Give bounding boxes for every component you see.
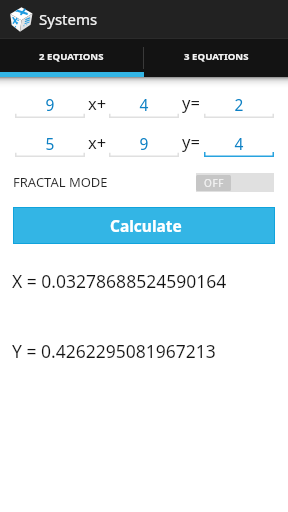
staticText: x+	[88, 131, 107, 153]
staticText: 2	[204, 94, 274, 115]
staticText: 5	[15, 133, 85, 154]
staticText: 9	[15, 94, 85, 115]
button[interactable]: 4	[204, 133, 274, 154]
staticText: OFF	[204, 176, 224, 190]
button[interactable]: 2	[204, 94, 274, 115]
staticText: Systems	[39, 9, 98, 29]
staticText: 3 EQUATIONS	[184, 50, 249, 63]
staticText: y=	[182, 91, 200, 113]
button[interactable]: 9	[15, 94, 85, 115]
staticText: X = 0.03278688524590164	[12, 269, 227, 293]
staticText: 2 EQUATIONS	[39, 50, 104, 63]
staticText: 4	[109, 94, 179, 115]
button[interactable]: 4	[109, 94, 179, 115]
staticText: y=	[182, 130, 200, 152]
button[interactable]: 5	[15, 133, 85, 154]
staticText: 9	[109, 133, 179, 154]
button[interactable]: Systems	[0, 0, 288, 38]
staticText: Calculate	[110, 215, 182, 236]
button[interactable]: FRACTAL MODE	[13, 173, 108, 191]
button[interactable]: 3 EQUATIONS	[144, 38, 288, 77]
staticText: 4	[204, 133, 274, 154]
button[interactable]: Calculate	[14, 208, 274, 243]
button[interactable]: Fractal mode toggle	[196, 173, 274, 192]
staticText: x+	[88, 92, 107, 114]
staticText: Y = 0.4262295081967213	[12, 339, 216, 363]
button[interactable]: 9	[109, 133, 179, 154]
button[interactable]: 2 EQUATIONS	[0, 38, 143, 77]
